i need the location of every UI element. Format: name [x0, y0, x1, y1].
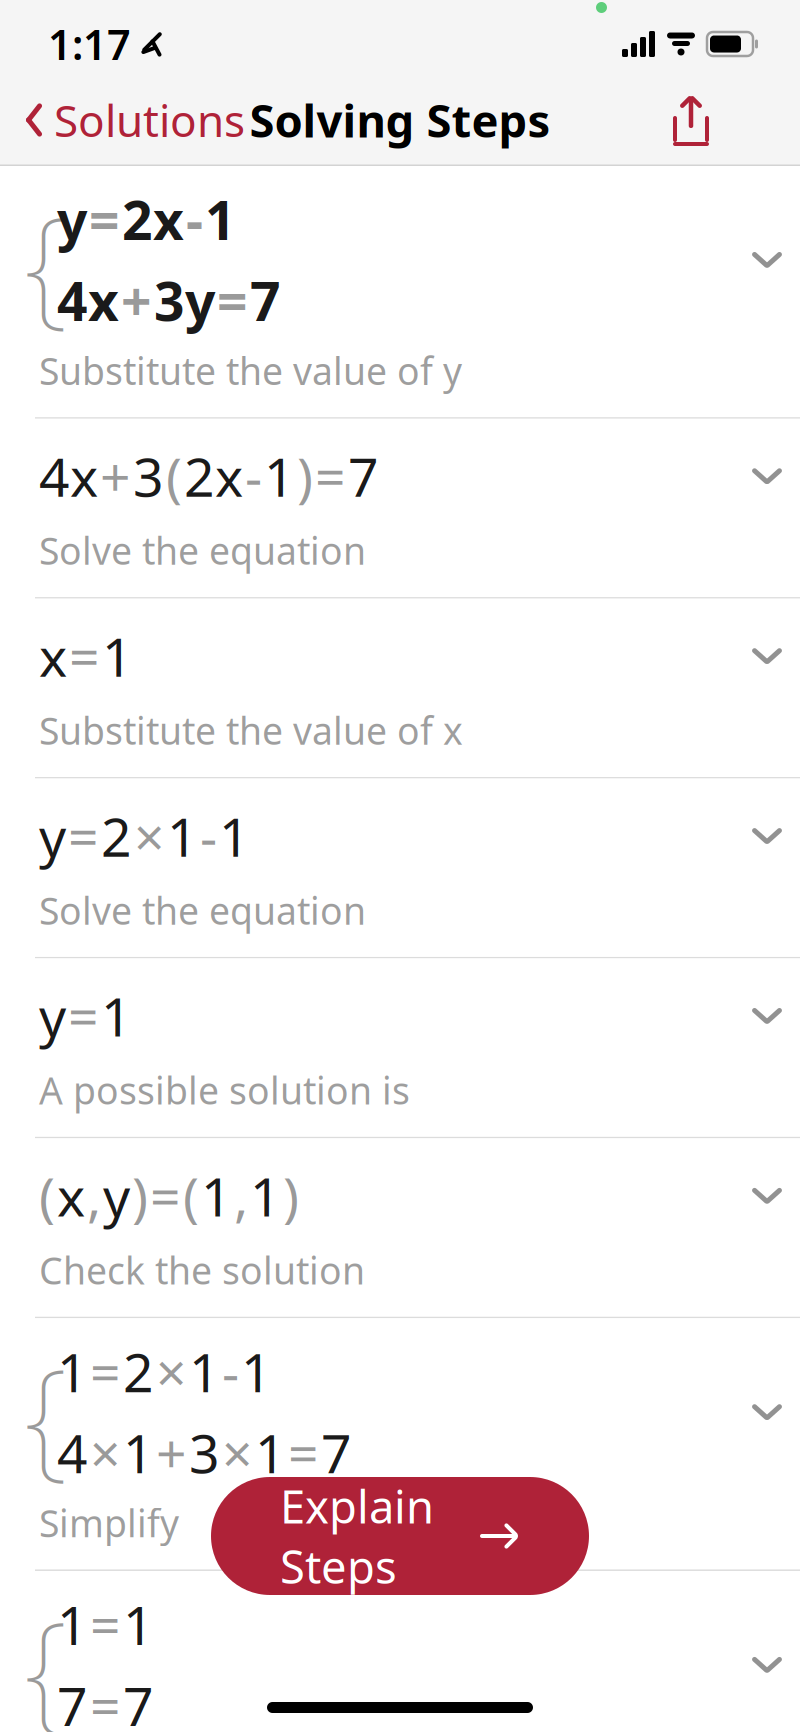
staticText: )	[132, 1160, 148, 1231]
staticText: A possible solution is	[39, 1065, 410, 1115]
staticText: 1	[101, 980, 132, 1051]
staticText: y	[39, 800, 66, 871]
staticText: 1	[57, 1336, 88, 1407]
staticText: ×	[156, 1336, 187, 1407]
staticText: =	[90, 1670, 121, 1732]
button[interactable]: y	[0, 958, 800, 1138]
staticText: 4	[57, 1417, 88, 1488]
staticText: 4x	[57, 265, 119, 336]
staticText: {	[24, 1578, 68, 1732]
button[interactable]: 4x	[0, 419, 800, 599]
staticText: 2	[123, 1336, 154, 1407]
staticText: 2x	[122, 184, 184, 255]
staticText: ×	[90, 1417, 121, 1488]
button[interactable]: x	[0, 599, 800, 778]
staticText: ×	[134, 800, 165, 871]
staticText: Check the solution	[39, 1245, 365, 1295]
staticText: +	[121, 265, 152, 336]
staticText: 7	[321, 1417, 352, 1488]
staticText: Solve the equation	[39, 885, 366, 935]
staticText: 1	[57, 1589, 88, 1660]
button[interactable]: Share	[660, 87, 722, 153]
staticText: =	[150, 1160, 181, 1231]
staticText: Explain Steps	[280, 1476, 434, 1596]
staticText: 7	[57, 1670, 88, 1732]
staticText: 1	[189, 1336, 220, 1407]
staticText: Substitute the value of x	[39, 705, 463, 755]
staticText: 7	[348, 441, 379, 511]
staticText: 7	[123, 1670, 154, 1732]
button[interactable]: {	[0, 1318, 800, 1571]
staticText: x	[57, 1160, 85, 1231]
staticText: 2x	[184, 441, 243, 511]
staticText: =	[288, 1417, 319, 1488]
staticText: 1	[219, 800, 250, 871]
staticText: Solving Steps	[249, 90, 550, 150]
staticText: Solve the equation	[39, 525, 366, 575]
staticText: Simplify	[39, 1498, 179, 1547]
button[interactable]: y	[0, 778, 800, 958]
staticText: -	[245, 441, 262, 511]
staticText: =	[68, 980, 99, 1051]
staticText: (	[166, 441, 182, 511]
staticText: -	[200, 800, 217, 871]
staticText: {	[24, 173, 68, 347]
staticText: =	[315, 441, 346, 511]
staticText: =	[69, 621, 100, 691]
staticText: y	[103, 1160, 130, 1231]
button[interactable]: Explain Steps	[211, 1477, 589, 1595]
staticText: +	[156, 1417, 187, 1488]
staticText: =	[90, 1336, 121, 1407]
staticText: (	[183, 1160, 199, 1231]
staticText: 1	[250, 1160, 281, 1231]
button[interactable]: Solutions	[18, 79, 251, 161]
staticText: +	[100, 441, 131, 511]
staticText: ,	[87, 1160, 101, 1231]
staticText: =	[90, 1589, 121, 1660]
staticText: Solutions	[54, 91, 245, 149]
button[interactable]: (	[0, 1138, 800, 1318]
staticText: 7	[250, 265, 281, 336]
staticText: 3y	[154, 265, 215, 336]
staticText: -	[222, 1336, 239, 1407]
staticText: 1	[205, 184, 236, 255]
staticText: 1:17	[48, 17, 131, 71]
staticText: =	[89, 184, 120, 255]
staticText: y	[57, 184, 87, 255]
staticText: =	[217, 265, 248, 336]
staticText: 1	[201, 1160, 232, 1231]
staticText: 1	[264, 441, 295, 511]
staticText: 1	[241, 1336, 272, 1407]
button[interactable]: {	[0, 1571, 800, 1732]
staticText: x	[39, 621, 67, 691]
staticText: 3	[189, 1417, 220, 1488]
staticText: -	[186, 184, 203, 255]
staticText: ×	[222, 1417, 253, 1488]
staticText: y	[39, 980, 66, 1051]
staticText: =	[68, 800, 99, 871]
staticText: (	[39, 1160, 55, 1231]
staticText: )	[297, 441, 313, 511]
staticText: Substitute the value of y	[39, 346, 462, 395]
staticText: 2	[101, 800, 132, 871]
staticText: )	[283, 1160, 299, 1231]
staticText: {	[24, 1325, 68, 1499]
staticText: 4x	[39, 441, 98, 511]
staticText: 3	[133, 441, 164, 511]
staticText: 1	[123, 1589, 154, 1660]
staticText: ,	[234, 1160, 248, 1231]
button[interactable]: {	[0, 166, 800, 419]
staticText: 1	[123, 1417, 154, 1488]
staticText: 1	[167, 800, 198, 871]
staticText: 1	[255, 1417, 286, 1488]
staticText: 1	[102, 621, 133, 691]
